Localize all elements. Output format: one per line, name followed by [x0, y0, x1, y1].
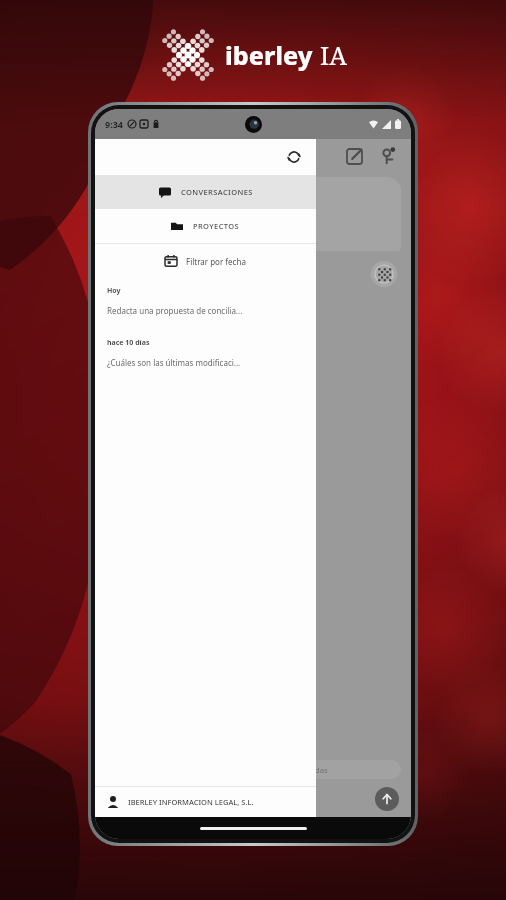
staticText: Filtrar por fecha [186, 256, 246, 267]
button[interactable]: Nueva conversación [341, 143, 367, 169]
button[interactable]: ¿Cuáles son las últimas modificaci... [95, 350, 316, 374]
button[interactable]: Actualizar [282, 145, 306, 169]
button[interactable]: IBERLEY INFORMACION LEGAL, S.L. [95, 787, 316, 817]
staticText: PROYECTOS [193, 221, 240, 231]
staticText: la empresa, CIF, domicilio correo [109, 351, 224, 361]
staticText: electrónico y nombre completo de [109, 361, 230, 371]
button[interactable]: PROYECTOS [95, 209, 316, 243]
staticText: ¿Cuáles son las últimas modificaci... [107, 357, 241, 368]
staticText: CONVERSACIONES [181, 187, 253, 197]
staticText: Hoy [107, 286, 121, 296]
staticText: iberley [225, 38, 313, 72]
staticText: Redacta una propuesta de concilia... [107, 305, 243, 316]
button[interactable]: Redacta una propuesta de concilia... [95, 298, 316, 322]
staticText: IA [320, 38, 347, 72]
staticText: APELLIDOS, DNI [109, 312, 169, 322]
staticText: hace 10 días [107, 338, 150, 348]
button[interactable]: Fijados [375, 143, 401, 169]
button[interactable]: Ir arriba [375, 787, 399, 811]
staticText: Ver consultas sugeridas [244, 765, 328, 775]
button[interactable]: Asistente Iberley [371, 261, 397, 287]
button[interactable]: Filtrar por fecha [95, 244, 316, 278]
staticText: 9:34 [105, 118, 123, 130]
button[interactable]: Ver consultas sugeridas [170, 760, 401, 779]
button[interactable]: Necesito ayuda con un caso [129, 177, 401, 251]
button[interactable]: CONVERSACIONES [95, 175, 316, 209]
staticText: Necesito ayuda con un caso [139, 186, 244, 197]
staticText: Datos de la empresa: razón social de [109, 341, 238, 351]
staticText: IBERLEY INFORMACION LEGAL, S.L. [128, 797, 254, 807]
staticText: DATOS DEL TRABAJADOR: NOMBRE Y [109, 293, 244, 303]
